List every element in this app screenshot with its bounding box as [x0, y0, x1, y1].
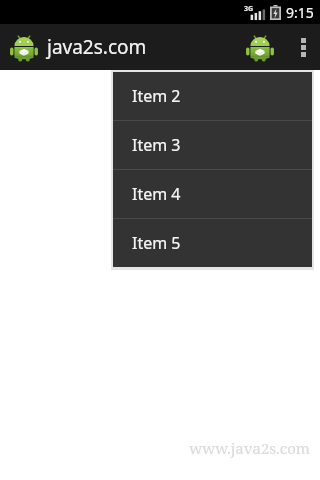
staticText: Item 2: [132, 85, 181, 107]
button[interactable]: More options: [286, 24, 320, 70]
staticText: java2s.com: [47, 34, 147, 60]
staticText: www.java2s.com: [189, 438, 310, 458]
button[interactable]: Item 5: [113, 219, 312, 267]
button[interactable]: Item 2: [113, 72, 312, 120]
button[interactable]: Item 4: [113, 170, 312, 218]
button[interactable]: java2s.com: [0, 32, 192, 62]
button[interactable]: Item 3: [113, 121, 312, 169]
staticText: Item 3: [132, 134, 181, 156]
button[interactable]: Android action: [234, 24, 286, 70]
staticText: 3G: [244, 4, 254, 14]
staticText: Item 5: [132, 232, 181, 254]
staticText: 9:15: [286, 3, 314, 22]
staticText: Item 4: [132, 183, 181, 205]
